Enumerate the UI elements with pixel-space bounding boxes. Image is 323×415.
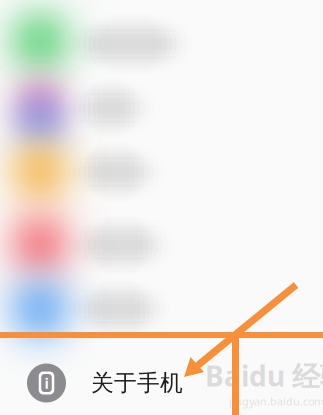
staticText: 关于手机 (91, 369, 183, 397)
staticText: jingyan.baidu.com (229, 394, 323, 408)
staticText: i (44, 373, 48, 393)
staticText: Baidu 经验 (205, 357, 323, 394)
button[interactable]: i (0, 353, 323, 413)
